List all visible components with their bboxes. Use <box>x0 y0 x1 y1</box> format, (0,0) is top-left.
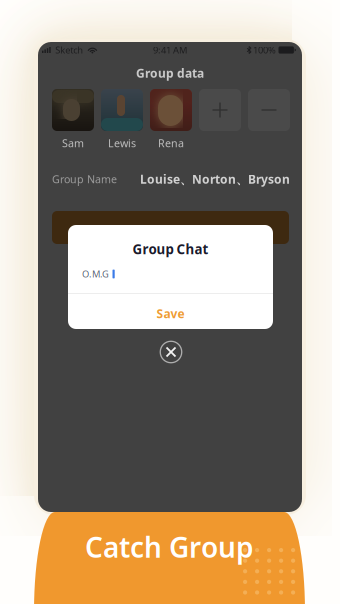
staticText: Rena <box>158 136 184 150</box>
button[interactable]: Save <box>68 296 273 331</box>
staticText: 100% <box>253 44 276 56</box>
button[interactable]: Close <box>158 339 184 365</box>
staticText: Sketch <box>55 44 83 56</box>
button[interactable] <box>52 211 289 244</box>
staticText: Group data <box>136 65 204 81</box>
button[interactable]: Rena <box>150 89 192 150</box>
button[interactable]: Remove member <box>248 89 290 150</box>
staticText: Save <box>156 305 184 321</box>
staticText: Group Name <box>52 172 117 186</box>
staticText: Lewis <box>108 136 136 150</box>
button[interactable]: Add member <box>199 89 241 150</box>
staticText: O.M.G <box>82 268 109 280</box>
staticText: Sam <box>62 136 84 150</box>
button[interactable]: Sam <box>52 89 94 150</box>
staticText: Group Chat <box>132 240 208 258</box>
staticText: 9:41 AM <box>153 44 187 56</box>
button[interactable]: Lewis <box>101 89 143 150</box>
staticText: Catch Group <box>85 528 254 566</box>
staticText: Louise、Norton、Bryson <box>140 171 290 187</box>
